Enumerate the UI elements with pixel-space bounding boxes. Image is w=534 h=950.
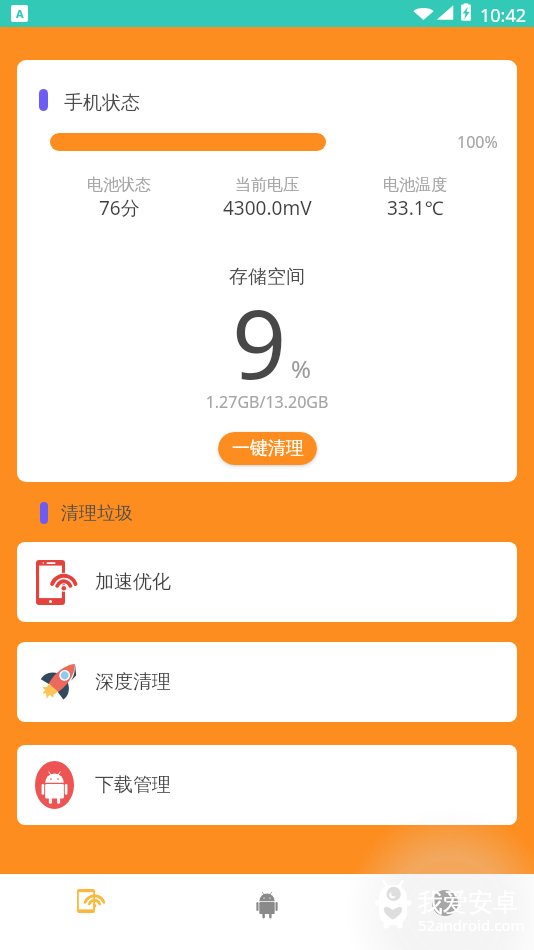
button[interactable]: 一键清理 bbox=[218, 432, 317, 465]
staticText: 电池状态 bbox=[87, 175, 151, 195]
button[interactable]: 手机加速 bbox=[0, 874, 178, 950]
staticText: 76分 bbox=[99, 195, 140, 221]
button[interactable]: 下载管理 bbox=[17, 745, 517, 825]
button[interactable]: 应用管理 bbox=[178, 874, 356, 950]
staticText: 清理垃圾 bbox=[61, 502, 133, 525]
staticText: 手机状态 bbox=[64, 91, 140, 115]
staticText: 33.1℃ bbox=[387, 195, 444, 221]
staticText: 深度清理 bbox=[95, 670, 171, 694]
staticText: 52android.com bbox=[418, 915, 525, 935]
staticText: 10:42 bbox=[480, 3, 527, 28]
staticText: 下载管理 bbox=[95, 773, 171, 797]
staticText: A bbox=[16, 6, 24, 21]
button[interactable]: 加速优化 bbox=[17, 542, 517, 622]
staticText: 电池温度 bbox=[383, 175, 447, 195]
staticText: 存储空间 bbox=[17, 265, 517, 289]
staticText: 一键清理 bbox=[232, 437, 304, 460]
staticText: 加速优化 bbox=[95, 570, 171, 594]
staticText: 1.27GB/13.20GB bbox=[17, 391, 517, 413]
staticText: 当前电压 bbox=[235, 175, 299, 195]
staticText: % bbox=[291, 352, 311, 385]
button[interactable]: 深度清理 bbox=[17, 642, 517, 722]
staticText: 100% bbox=[457, 131, 498, 153]
staticText: 9 bbox=[232, 277, 287, 387]
staticText: 我爱安卓 bbox=[418, 887, 518, 918]
button[interactable]: 我的 bbox=[356, 874, 534, 950]
staticText: 4300.0mV bbox=[223, 195, 312, 221]
